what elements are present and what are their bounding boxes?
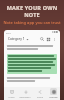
- staticText: Settings: [49, 96, 58, 99]
- staticText: Notes: [8, 96, 15, 99]
- button[interactable]: Category 1: [7, 36, 30, 42]
- button[interactable]: Notes: [4, 87, 18, 100]
- staticText: Note taking app you can trust: [0, 20, 64, 25]
- button[interactable]: [7, 54, 57, 74]
- button[interactable]: Settings: [46, 87, 60, 100]
- button[interactable]: Search: [39, 36, 45, 42]
- button[interactable]: Share: [32, 87, 46, 100]
- button[interactable]: Reminders: [18, 87, 32, 100]
- staticText: Category 1: [8, 37, 25, 41]
- button[interactable]: View layout: [45, 36, 51, 42]
- staticText: 9:41: [6, 31, 11, 34]
- staticText: MAKE YOUR OWN NOTE: [0, 4, 64, 18]
- button[interactable]: More options: [51, 36, 57, 42]
- staticText: Share: [37, 96, 43, 99]
- staticText: Reminders: [19, 96, 31, 99]
